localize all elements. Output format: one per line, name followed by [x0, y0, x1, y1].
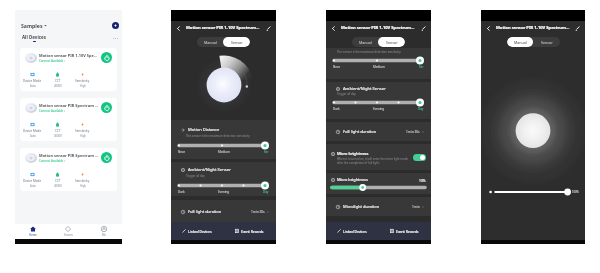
button[interactable]: Manual — [352, 37, 378, 47]
staticText: Near — [333, 65, 340, 69]
staticText: Linked Devices — [343, 229, 367, 234]
staticText: Device Mode — [23, 129, 42, 133]
staticText: Motion sensor PIR Spectrum SM... — [39, 153, 99, 158]
staticText: Me — [102, 233, 106, 237]
staticText: 1min — [412, 205, 420, 209]
staticText: 1min 30s — [406, 130, 420, 134]
staticText: Motion Distance — [188, 127, 220, 133]
button[interactable]: Event Records — [378, 222, 431, 240]
staticText: All Devices — [22, 34, 47, 40]
button[interactable]: Linked Devices — [171, 222, 223, 240]
staticText: Near — [178, 150, 185, 154]
staticText: Ambient/Night Sensor — [188, 167, 231, 173]
staticText: Trigger all day — [186, 174, 205, 178]
button[interactable]: Full light duration — [171, 200, 276, 223]
button[interactable]: Power toggle — [101, 102, 112, 113]
button[interactable]: Back — [174, 24, 183, 33]
button[interactable]: Back — [484, 24, 493, 33]
button[interactable]: Sensor — [533, 37, 560, 47]
staticText: Device Mode — [23, 79, 42, 83]
button[interactable]: Micro brightness toggle — [413, 154, 426, 161]
button[interactable]: Sensor — [223, 37, 250, 47]
staticText: Manual — [204, 40, 217, 45]
button[interactable]: Home — [15, 224, 50, 239]
staticText: Motion sensor PIR 1-10V Spectrum... — [341, 25, 415, 31]
staticText: Evening — [218, 190, 230, 194]
button[interactable]: Motion sensor PIR 1-10V Spectra... — [20, 48, 117, 91]
button[interactable]: Microlight duration — [326, 197, 431, 216]
button[interactable]: Sensor — [378, 37, 405, 47]
button[interactable]: Edit — [573, 24, 582, 33]
staticText: Auto — [30, 84, 36, 88]
button[interactable]: More options — [113, 37, 118, 40]
button[interactable]: Add device — [112, 22, 119, 29]
staticText: 1min 30s — [251, 210, 265, 214]
staticText: Dark — [178, 190, 185, 194]
staticText: High — [80, 84, 86, 88]
button[interactable]: Ambient/Night Sensor — [326, 82, 431, 119]
button[interactable]: Manual — [507, 37, 533, 47]
staticText: Dark — [333, 107, 340, 111]
button[interactable]: Manual — [197, 37, 223, 47]
button[interactable]: Edit — [419, 24, 428, 33]
button[interactable]: Event Records — [223, 222, 276, 240]
button[interactable]: Edit — [264, 24, 273, 33]
button[interactable]: Full light duration — [326, 122, 431, 141]
button[interactable]: Motion sensor PIR Spectrum SM... — [20, 98, 117, 141]
staticText: Sensitivity — [75, 129, 90, 133]
staticText: Device Mode — [23, 179, 42, 183]
staticText: Ambient/Night Sensor — [343, 86, 386, 92]
staticText: Day — [263, 190, 269, 194]
staticText: Motion sensor PIR Spectrum SM... — [39, 103, 99, 108]
staticText: Micro brightness — [337, 151, 369, 156]
staticText: Sensor — [231, 40, 243, 45]
staticText: Motion sensor PIR 1-10V Spectrum... — [496, 25, 570, 31]
staticText: This sensor is the maximum detection sen… — [186, 134, 250, 138]
staticText: Micro brightness — [337, 177, 368, 182]
button[interactable]: Power toggle — [101, 52, 112, 63]
staticText: Far — [419, 65, 424, 69]
staticText: Trigger all day — [337, 92, 356, 96]
staticText: 4000K — [54, 84, 62, 88]
staticText: When it is turned on, it will enter the … — [337, 157, 410, 164]
staticText: Microlight duration — [343, 204, 380, 209]
staticText: CCT — [55, 79, 61, 83]
staticText: CCT — [55, 129, 61, 133]
staticText: Connect Available › — [39, 159, 65, 163]
staticText: 4000K — [54, 134, 62, 138]
staticText: Connect Available › — [39, 59, 65, 63]
button[interactable]: Micro brightness — [326, 173, 431, 194]
staticText: Scenes — [64, 233, 73, 237]
staticText: 10% — [419, 178, 426, 182]
staticText: Sensor — [386, 40, 398, 45]
button[interactable]: Ambient/Night Sensor — [171, 162, 276, 196]
button[interactable]: Power toggle — [101, 152, 112, 163]
staticText: Home — [29, 233, 37, 237]
button[interactable]: Motion Distance — [171, 120, 276, 159]
staticText: This sensor is the maximum detection sen… — [337, 50, 401, 54]
staticText: Motion sensor PIR 1-10V Spectrum... — [186, 25, 260, 31]
staticText: High — [80, 134, 86, 138]
button[interactable]: Linked Devices — [326, 222, 378, 240]
button[interactable]: Scenes — [50, 224, 86, 239]
button[interactable]: Me — [86, 224, 122, 239]
staticText: Sensor — [541, 40, 553, 45]
button[interactable]: Motion sensor PIR Spectrum SM... — [20, 148, 117, 191]
button[interactable]: Brightness — [490, 188, 571, 196]
staticText: Manual — [359, 40, 372, 45]
staticText: Samples — [21, 22, 43, 29]
staticText: Manual — [514, 40, 527, 45]
staticText: Event Records — [241, 229, 264, 234]
staticText: Auto — [30, 184, 36, 188]
staticText: Far — [264, 150, 269, 154]
staticText: Sensitivity — [75, 179, 90, 183]
staticText: Evening — [373, 107, 385, 111]
button[interactable]: This sensor is the maximum detection sen… — [326, 48, 431, 79]
staticText: Full light duration — [188, 209, 222, 214]
button[interactable]: Micro brightness — [326, 144, 431, 170]
button[interactable]: Back — [329, 24, 338, 33]
staticText: 100% — [572, 190, 579, 194]
staticText: 4000K — [54, 184, 62, 188]
staticText: Motion sensor PIR 1-10V Spectra... — [39, 53, 99, 58]
staticText: Day — [418, 107, 424, 111]
